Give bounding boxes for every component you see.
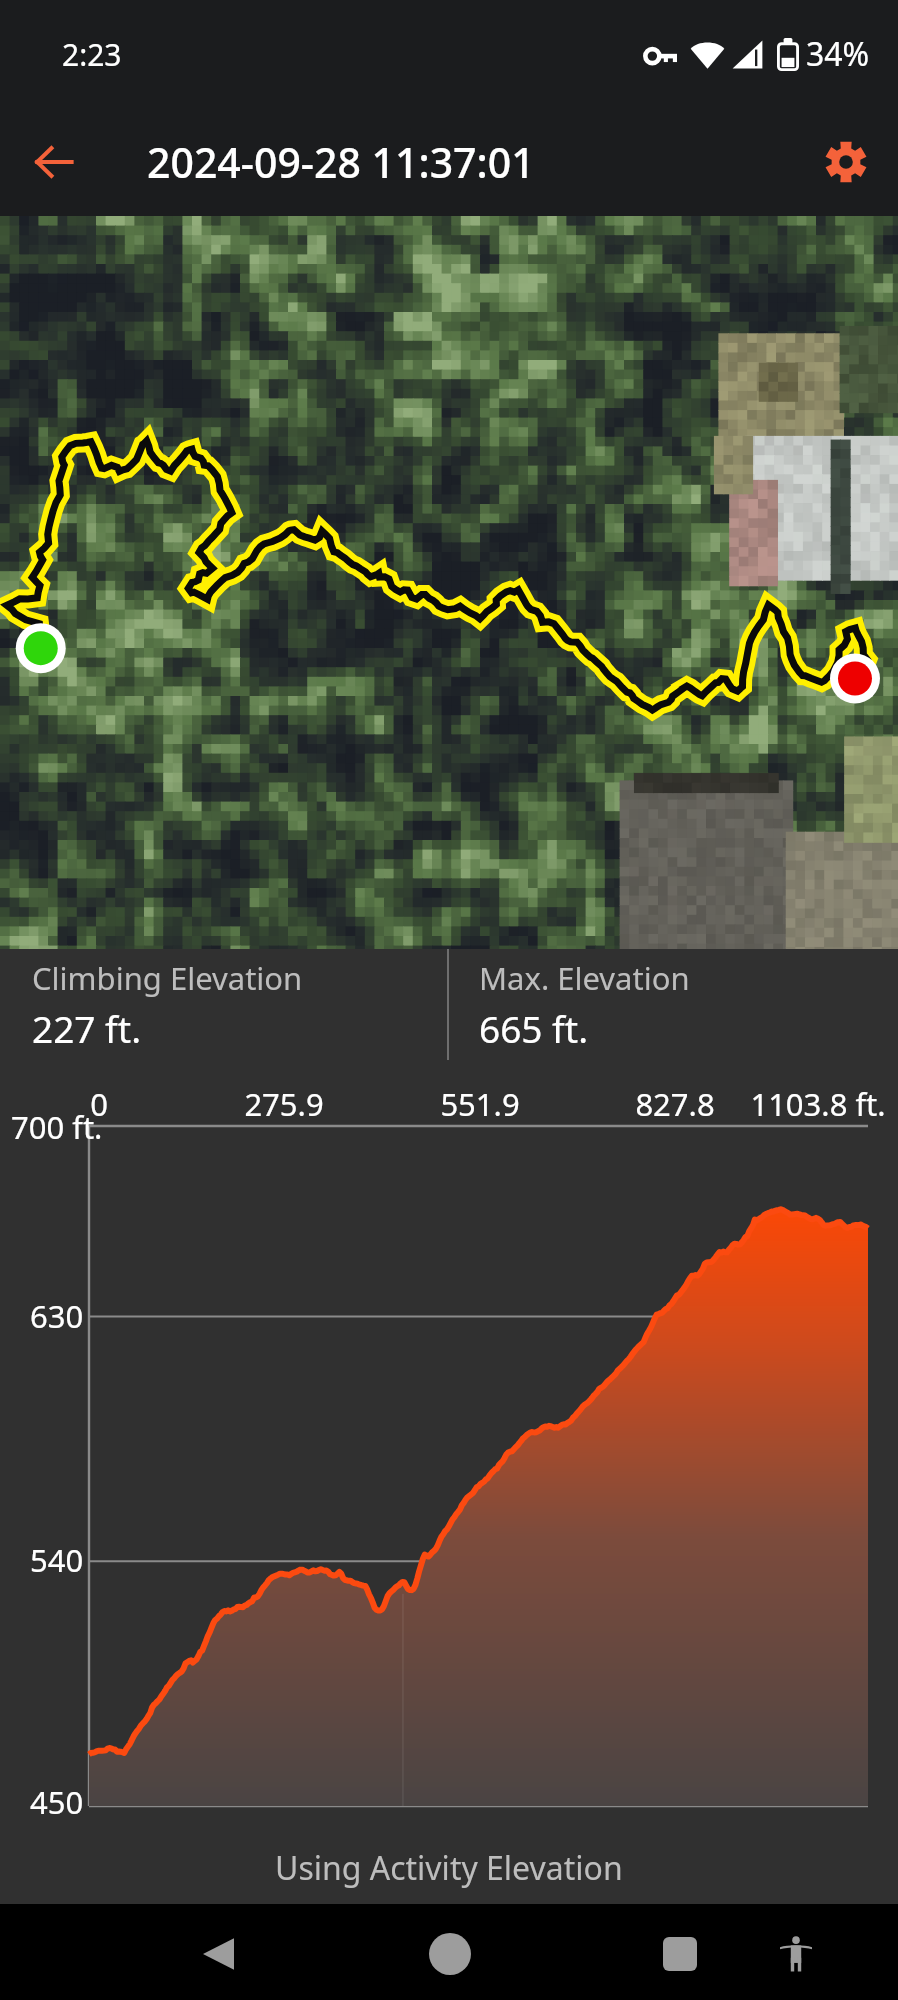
staticText: 540 [30, 1539, 84, 1581]
staticText: 0 [0, 1083, 209, 1125]
staticText: Max. Elevation [479, 957, 690, 999]
staticText: 630 [30, 1295, 84, 1337]
staticText: 1103.8 ft. [708, 1083, 898, 1125]
staticText: 827.8 [565, 1083, 785, 1125]
button[interactable]: Accessibility [746, 1908, 846, 2000]
button[interactable]: Back [160, 1908, 276, 2000]
staticText: Climbing Elevation [32, 957, 303, 999]
button[interactable]: Settings [816, 132, 876, 192]
staticText: 665 ft. [479, 1003, 589, 1053]
staticText: Using Activity Elevation [275, 1846, 623, 1890]
button[interactable]: Back [24, 132, 84, 192]
button[interactable]: Home [392, 1908, 508, 2000]
button[interactable]: Recent apps [622, 1908, 738, 2000]
staticText: 2:23 [62, 34, 122, 75]
staticText: 551.9 [370, 1083, 590, 1125]
staticText: 2024-09-28 11:37:01 [147, 134, 535, 190]
staticText: 34% [806, 32, 870, 76]
staticText: 275.9 [174, 1083, 394, 1125]
staticText: 700 ft. [11, 1106, 103, 1148]
staticText: 227 ft. [32, 1003, 142, 1053]
staticText: 450 [30, 1781, 84, 1823]
